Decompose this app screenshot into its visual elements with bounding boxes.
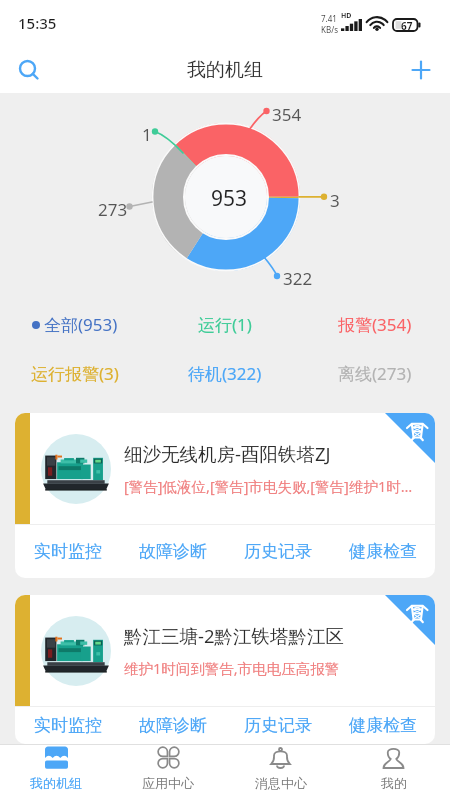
staticText: 黔江三塘-2黔江铁塔黔江区 [124, 623, 345, 648]
button[interactable]: 故障诊断 [120, 707, 225, 744]
staticText: 7.41 [321, 13, 337, 24]
staticText: 实时监控 [34, 715, 102, 736]
button[interactable]: Search [12, 53, 46, 87]
button[interactable]: 全部(953) [0, 313, 150, 336]
staticText: HD [341, 11, 352, 21]
staticText: 运行报警(3) [31, 362, 119, 385]
button[interactable]: 实时监控 [15, 707, 120, 744]
staticText: 健康检查 [349, 715, 417, 736]
button[interactable]: 我的机组 [0, 745, 112, 791]
staticText: 67 [401, 19, 413, 31]
staticText: 消息中心 [255, 775, 307, 791]
staticText: 离线(273) [338, 362, 412, 385]
button[interactable]: 报警(354) [300, 313, 450, 336]
staticText: [警告]低液位,[警告]市电失败,[警告]维护1时… [124, 476, 413, 496]
staticText: 273 [98, 198, 128, 221]
staticText: 全部(953) [44, 313, 118, 336]
staticText: 我的机组 [30, 775, 82, 791]
button[interactable]: 历史记录 [225, 707, 330, 744]
staticText: 历史记录 [244, 541, 312, 562]
staticText: KB/s [321, 24, 338, 35]
staticText: 待机(322) [188, 362, 262, 385]
staticText: 应用中心 [142, 775, 194, 791]
staticText: 我的 [381, 775, 407, 791]
staticText: 健康检查 [349, 541, 417, 562]
button[interactable]: 实时监控 [15, 525, 120, 578]
button[interactable]: 运行(1) [150, 313, 300, 336]
staticText: 322 [283, 267, 313, 290]
button[interactable]: 运行报警(3) [0, 362, 150, 385]
staticText: 实时监控 [34, 541, 102, 562]
button[interactable]: 健康检查 [330, 525, 435, 578]
button[interactable]: 待机(322) [150, 362, 300, 385]
staticText: 故障诊断 [139, 541, 207, 562]
staticText: 故障诊断 [139, 715, 207, 736]
staticText: 3 [330, 189, 340, 212]
button[interactable]: 故障诊断 [120, 525, 225, 578]
button[interactable]: 离线(273) [300, 362, 450, 385]
button[interactable]: 我的 [337, 745, 450, 791]
button[interactable]: 消息中心 [224, 745, 337, 791]
button[interactable]: 历史记录 [225, 525, 330, 578]
staticText: 报警(354) [338, 313, 412, 336]
staticText: 354 [272, 103, 302, 126]
staticText: 维护1时间到警告,市电电压高报警 [124, 658, 340, 678]
staticText: 953 [211, 184, 248, 213]
staticText: 15:35 [18, 13, 57, 33]
staticText: 1 [142, 123, 152, 146]
button[interactable]: 健康检查 [330, 707, 435, 744]
staticText: 我的机组 [187, 58, 263, 82]
staticText: 运行(1) [198, 313, 252, 336]
staticText: 历史记录 [244, 715, 312, 736]
button[interactable]: Add [404, 53, 438, 87]
button[interactable]: 应用中心 [112, 745, 224, 791]
staticText: 细沙无线机房-酉阳铁塔ZJ [124, 441, 331, 466]
